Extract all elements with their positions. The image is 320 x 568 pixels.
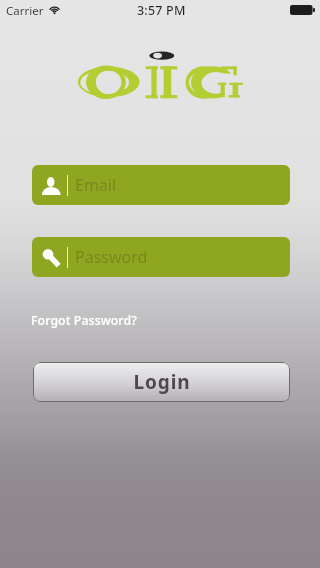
button[interactable]: Login xyxy=(33,362,290,402)
button[interactable]: Forgot Password? xyxy=(31,312,137,329)
staticText: Email xyxy=(75,174,117,196)
staticText: Password xyxy=(75,246,148,268)
staticText: Login xyxy=(133,369,191,395)
staticText: 3:57 PM xyxy=(137,2,186,19)
staticText: Carrier xyxy=(6,3,44,19)
button[interactable]: Password xyxy=(32,237,290,277)
button[interactable]: Email xyxy=(32,165,290,205)
